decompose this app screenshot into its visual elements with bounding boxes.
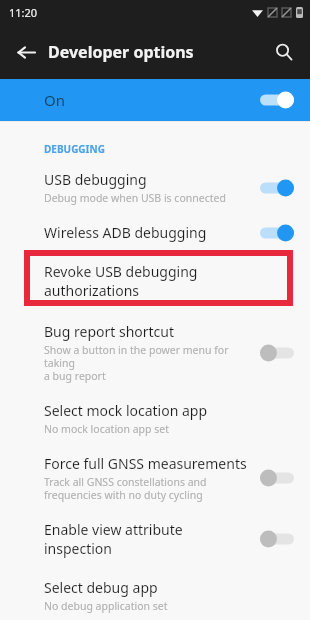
button[interactable]: Search xyxy=(264,32,304,72)
button[interactable]: Bug report shortcut xyxy=(0,322,310,383)
staticText: DEBUGGING xyxy=(44,142,105,156)
button[interactable]: Enable view attribute inspection xyxy=(0,520,310,558)
staticText: Revoke USB debugging authorizations xyxy=(44,262,286,300)
staticText: Select debug app xyxy=(44,578,158,597)
staticText: Enable view attribute inspection xyxy=(44,520,252,558)
button[interactable]: On xyxy=(0,79,310,121)
staticText: USB debugging xyxy=(44,170,147,189)
staticText: 11:20 xyxy=(9,5,38,20)
staticText: Show a button in the power menu for taki… xyxy=(44,343,252,383)
button[interactable]: Back xyxy=(6,32,46,72)
button[interactable]: Force full GNSS measurements xyxy=(0,454,310,502)
staticText: Force full GNSS measurements xyxy=(44,454,247,473)
button[interactable]: Select mock location app xyxy=(0,401,310,436)
staticText: No debug application set xyxy=(44,599,168,613)
staticText: Developer options xyxy=(48,41,194,63)
staticText: Debug mode when USB is connected xyxy=(44,191,226,205)
staticText: Wireless ADB debugging xyxy=(44,223,207,242)
staticText: Bug report shortcut xyxy=(44,322,175,341)
button[interactable]: Wireless ADB debugging xyxy=(0,223,310,242)
staticText: No mock location app set xyxy=(44,422,169,436)
staticText: Track all GNSS constellations and freque… xyxy=(44,475,207,502)
staticText: Select mock location app xyxy=(44,401,208,420)
button[interactable]: Revoke USB debugging authorizations xyxy=(0,262,310,300)
button[interactable]: USB debugging xyxy=(0,170,310,205)
button[interactable]: Select debug app xyxy=(0,578,310,613)
staticText: On xyxy=(44,90,260,110)
